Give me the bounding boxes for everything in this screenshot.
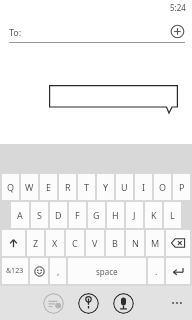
staticText: L <box>170 209 175 221</box>
button[interactable]: R <box>59 174 76 200</box>
staticText: S <box>37 209 42 221</box>
button[interactable]: B <box>106 230 124 256</box>
button[interactable]: T <box>78 174 95 200</box>
button[interactable]: Shift <box>2 230 25 256</box>
button[interactable]: P <box>173 174 190 200</box>
staticText: . <box>155 265 158 277</box>
button[interactable]: W <box>21 174 38 200</box>
button[interactable]: Add recipient <box>170 24 185 39</box>
button[interactable]: &123 <box>2 258 28 284</box>
button[interactable]: K <box>145 202 162 228</box>
staticText: N <box>132 237 139 249</box>
button[interactable]: V <box>86 230 104 256</box>
button[interactable]: H <box>107 202 124 228</box>
staticText: B <box>112 237 118 249</box>
staticText: C <box>72 237 78 249</box>
button[interactable]: S <box>31 202 48 228</box>
staticText: M <box>151 237 160 249</box>
staticText: J <box>133 209 136 221</box>
staticText: I <box>142 181 146 193</box>
staticText: R <box>65 181 71 193</box>
staticText: W <box>25 181 34 193</box>
staticText: O <box>159 181 167 193</box>
button[interactable]: I <box>135 174 152 200</box>
button[interactable]: Enter <box>166 258 190 284</box>
button[interactable]: space <box>68 258 146 284</box>
staticText: A <box>17 209 23 221</box>
staticText: To: <box>9 26 22 38</box>
button[interactable]: Voice <box>113 293 134 314</box>
staticText: U <box>121 181 128 193</box>
staticText: Q <box>7 181 15 193</box>
button[interactable]: . <box>148 258 164 284</box>
staticText: Z <box>33 237 39 249</box>
button[interactable]: Send <box>43 293 64 314</box>
staticText: 5:24 <box>170 2 186 13</box>
staticText: D <box>55 209 62 221</box>
button[interactable] <box>49 85 178 113</box>
button[interactable]: M <box>146 230 164 256</box>
button[interactable]: Emoji <box>30 258 48 284</box>
staticText: K <box>151 209 157 221</box>
button[interactable]: Q <box>2 174 19 200</box>
button[interactable]: U <box>116 174 133 200</box>
staticText: H <box>112 209 119 221</box>
button[interactable]: Z <box>27 230 44 256</box>
button[interactable]: G <box>88 202 105 228</box>
staticText: X <box>52 237 58 249</box>
button[interactable]: X <box>46 230 64 256</box>
button[interactable]: J <box>126 202 143 228</box>
button[interactable]: More options <box>167 293 187 313</box>
button[interactable]: N <box>126 230 144 256</box>
staticText: V <box>92 237 98 249</box>
button[interactable]: D <box>50 202 67 228</box>
staticText: , <box>57 265 60 277</box>
button[interactable]: A <box>11 202 29 228</box>
staticText: Y <box>103 181 109 193</box>
staticText: P <box>179 181 185 193</box>
button[interactable]: L <box>164 202 181 228</box>
button[interactable]: Backspace <box>166 230 190 256</box>
staticText: T <box>84 181 90 193</box>
button[interactable]: C <box>66 230 84 256</box>
staticText: G <box>93 209 100 221</box>
staticText: space <box>96 266 118 277</box>
staticText: E <box>46 181 52 193</box>
button[interactable]: O <box>154 174 171 200</box>
button[interactable]: Y <box>97 174 114 200</box>
button[interactable]: E <box>40 174 57 200</box>
button[interactable]: Attach <box>78 293 99 314</box>
staticText: F <box>75 209 80 221</box>
staticText: &123 <box>6 266 24 276</box>
button[interactable]: F <box>69 202 86 228</box>
button[interactable]: , <box>50 258 66 284</box>
